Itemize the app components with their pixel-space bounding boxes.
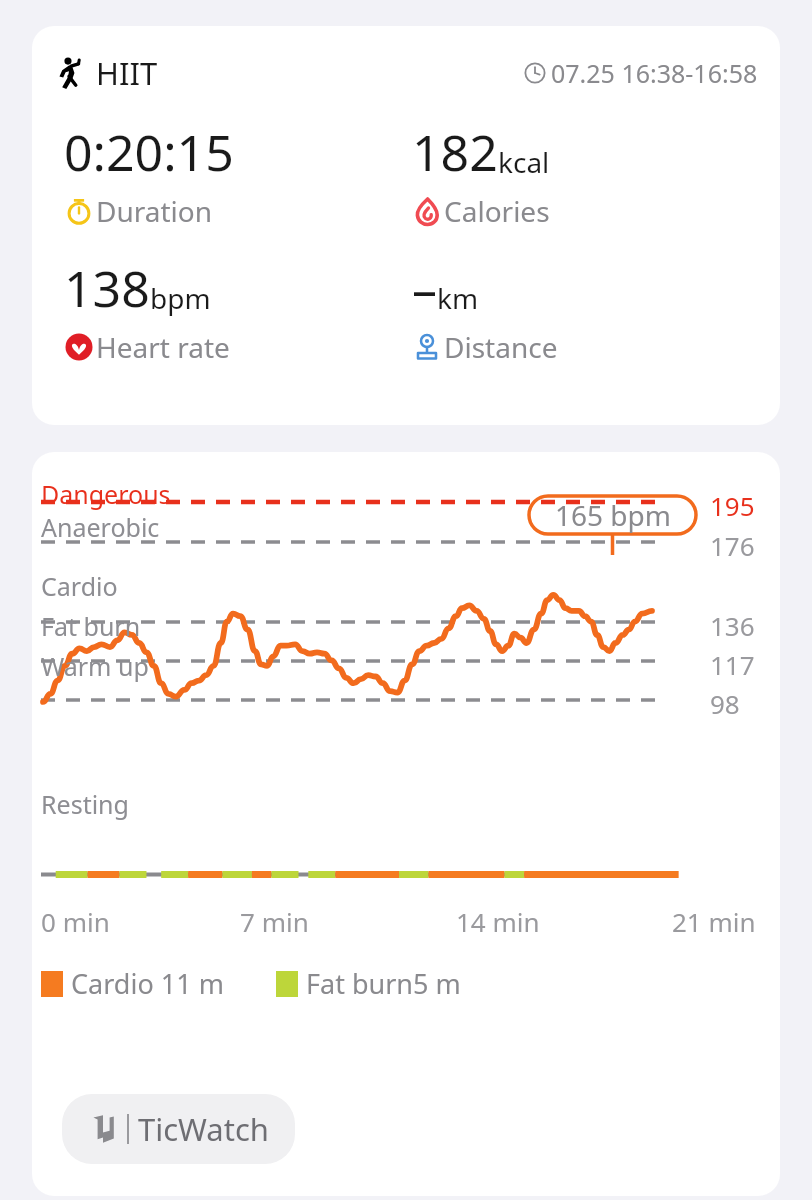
staticText: Distance (444, 328, 558, 366)
button[interactable]: 182 (412, 118, 760, 230)
staticText: – (412, 254, 437, 322)
staticText: 195 (710, 488, 755, 523)
staticText: Calories (444, 192, 550, 230)
staticText: 182 (412, 118, 498, 186)
staticText: Warm up (41, 649, 149, 683)
staticText: Anaerobic (41, 510, 160, 544)
button[interactable]: 138 (64, 254, 412, 366)
staticText: 7 min (240, 904, 309, 939)
staticText: Resting (41, 787, 129, 821)
staticText: 176 (710, 528, 755, 563)
staticText: 136 (710, 608, 755, 643)
staticText: Duration (96, 192, 213, 230)
button[interactable]: TicWatch (62, 1094, 295, 1164)
button[interactable]: HIIT (32, 26, 780, 425)
staticText: kcal (498, 143, 550, 181)
staticText: Cardio 11 m (71, 965, 224, 1002)
staticText: HIIT (96, 52, 158, 94)
staticText: 138 (64, 254, 150, 322)
staticText: Heart rate (96, 328, 230, 366)
staticText: Fat burn (41, 609, 141, 643)
staticText: 117 (710, 647, 755, 682)
staticText: 14 min (456, 904, 540, 939)
staticText: bpm (150, 279, 211, 317)
staticText: 0 min (41, 904, 110, 939)
staticText: 165 bpm (555, 496, 671, 534)
staticText: km (437, 279, 479, 317)
staticText: 0:20:15 (64, 118, 234, 186)
button[interactable]: 0:20:15 (64, 118, 412, 230)
staticText: 07.25 16:38-16:58 (551, 56, 758, 90)
staticText: 98 (710, 686, 740, 721)
staticText: TicWatch (138, 1108, 269, 1150)
button[interactable]: Dangerous (32, 452, 780, 1196)
staticText: Fat burn5 m (306, 965, 461, 1002)
staticText: 21 min (672, 904, 756, 939)
staticText: Cardio (41, 569, 118, 603)
staticText: Dangerous (41, 477, 171, 511)
button[interactable]: – (412, 254, 760, 366)
